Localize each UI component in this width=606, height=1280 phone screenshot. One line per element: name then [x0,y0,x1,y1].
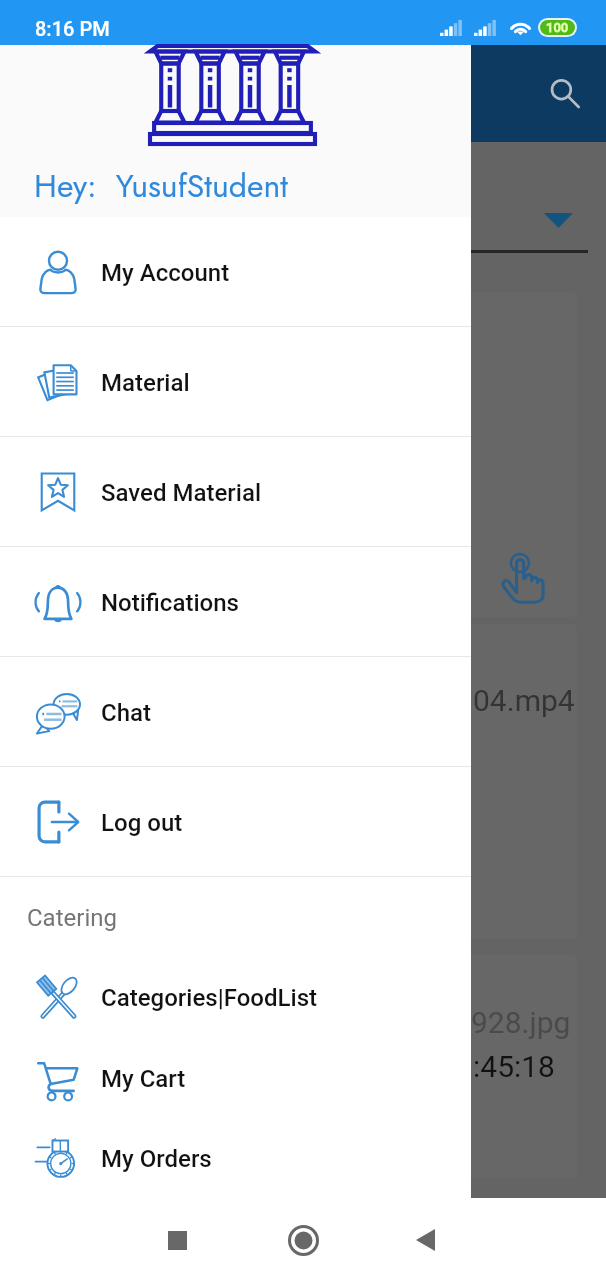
staticText: Notifications [101,589,239,617]
staticText: Chat [101,699,151,727]
staticText: 04.mp4 [473,683,575,718]
button[interactable]: Back [390,1205,460,1275]
staticText: 928.jpg [471,1005,571,1040]
staticText: My Account [101,259,230,287]
staticText: Hey: YusufStudent [34,163,289,209]
staticText: Log out [101,809,183,837]
staticText: My Cart [101,1065,186,1093]
button[interactable]: Chat [0,657,471,766]
button[interactable]: Log out [0,767,471,876]
button[interactable]: My Cart [0,1037,471,1118]
staticText: Material [101,369,190,397]
button[interactable]: Notifications [0,547,471,656]
button[interactable]: Home [268,1205,338,1275]
staticText: 8:16 PM [35,17,110,40]
button[interactable]: Saved Material [0,437,471,546]
button[interactable]: Search [538,67,592,121]
staticText: My Orders [101,1145,212,1173]
staticText: Catering [27,904,117,932]
button[interactable]: Material [0,327,471,436]
button[interactable]: My Account [0,217,471,326]
button[interactable]: Recents [142,1205,212,1275]
staticText: Categories|FoodList [101,984,318,1012]
staticText: Saved Material [101,479,262,507]
button[interactable]: My Orders [0,1118,471,1198]
staticText: :45:18 [473,1049,555,1084]
button[interactable]: Categories|FoodList [0,956,471,1037]
staticText: 100 [546,20,569,35]
